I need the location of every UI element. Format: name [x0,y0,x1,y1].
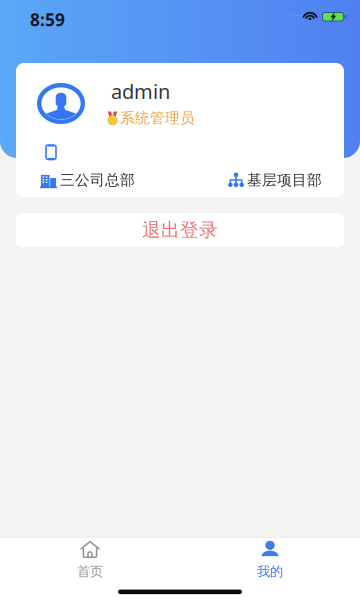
button[interactable]: 我的 [180,537,360,581]
button[interactable]: 首页 [0,537,180,581]
staticText: 首页 [77,563,103,580]
staticText: 退出登录 [142,218,218,241]
staticText: 基层项目部 [247,171,322,189]
staticText: 8:59 [30,8,65,31]
staticText: 三公司总部 [60,171,135,189]
staticText: 我的 [257,563,283,580]
staticText: admin [111,78,170,105]
button[interactable]: 退出登录 [16,213,344,247]
staticText: 系统管理员 [120,109,195,127]
